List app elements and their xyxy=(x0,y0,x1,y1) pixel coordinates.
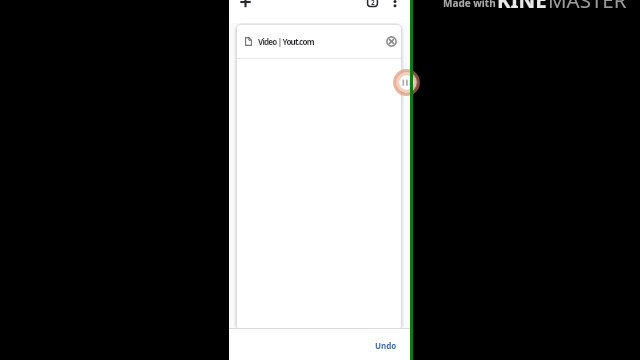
staticText: Video | Yout.com xyxy=(258,36,314,47)
button[interactable]: New tab xyxy=(236,0,254,10)
staticText: Undo xyxy=(375,340,397,351)
button[interactable]: Undo xyxy=(375,340,397,351)
staticText: MASTER xyxy=(548,0,627,14)
staticText: 2 xyxy=(371,0,375,7)
staticText: KINE xyxy=(497,0,547,14)
button[interactable]: Switch tabs xyxy=(367,0,378,7)
button[interactable]: Close tab xyxy=(386,36,397,47)
button[interactable]: More options xyxy=(389,0,401,7)
staticText: Made with xyxy=(443,0,496,10)
button[interactable]: Video | Yout.com xyxy=(237,25,401,329)
